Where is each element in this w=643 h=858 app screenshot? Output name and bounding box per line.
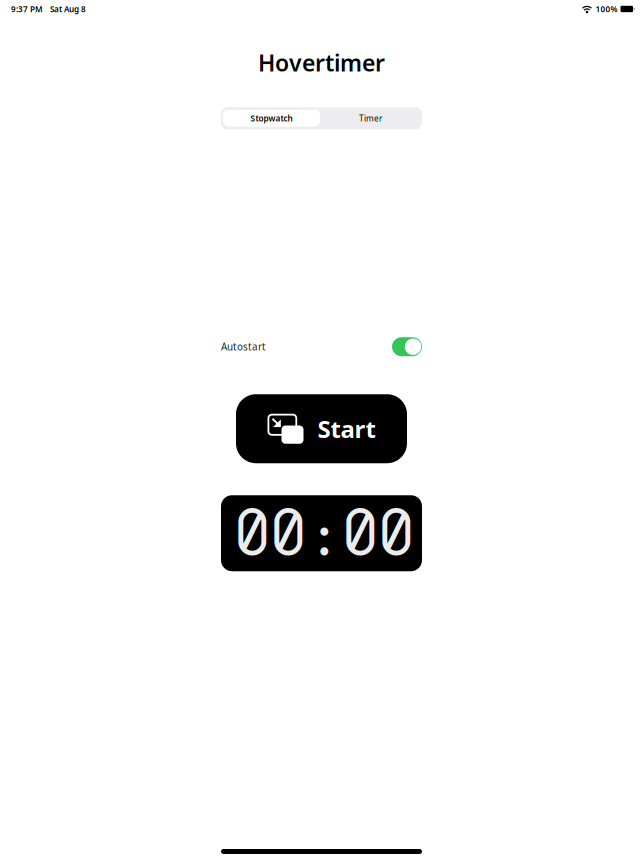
staticText: Autostart: [221, 340, 266, 353]
button[interactable]: Autostart: [392, 337, 422, 356]
staticText: Start: [317, 412, 375, 445]
staticText: Hovertimer: [258, 47, 385, 78]
staticText: Sat Aug 8: [50, 3, 86, 15]
staticText: Timer: [359, 113, 382, 124]
staticText: 100%: [595, 3, 617, 15]
button[interactable]: Start: [236, 394, 407, 463]
staticText: Stopwatch: [250, 113, 292, 124]
staticText: 9:37 PM: [11, 3, 43, 15]
staticText: 00:00: [234, 487, 414, 575]
button[interactable]: Stopwatch: [223, 110, 320, 127]
button[interactable]: Timer: [321, 110, 420, 127]
